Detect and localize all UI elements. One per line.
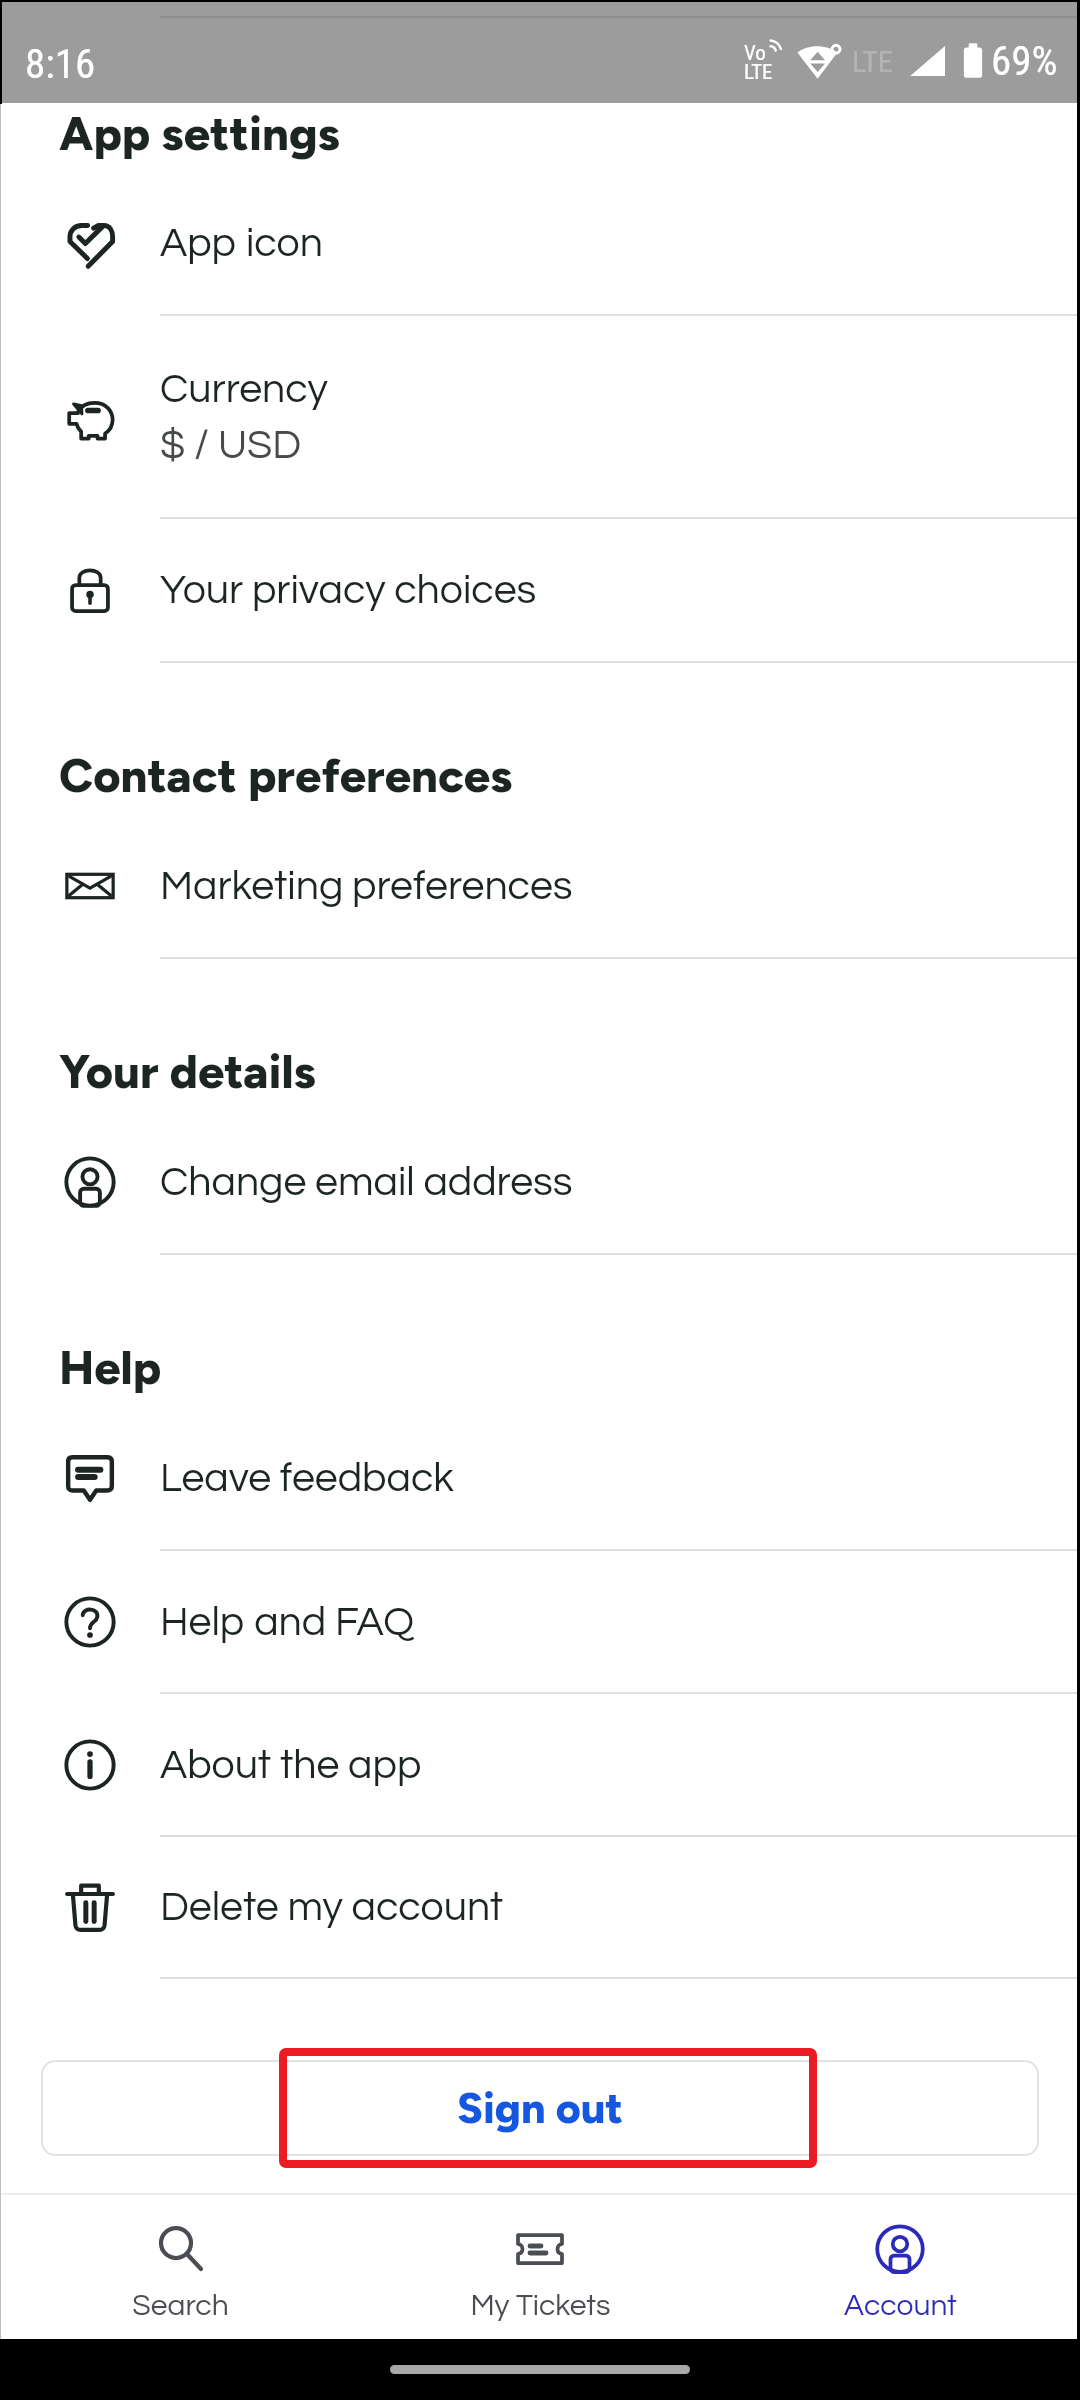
staticText: App icon: [160, 222, 323, 264]
staticText: My Tickets: [470, 2290, 611, 2321]
staticText: App settings: [59, 105, 341, 161]
button[interactable]: Currency: [0, 316, 1080, 517]
staticText: Your details: [59, 1043, 317, 1099]
staticText: Help: [59, 1339, 162, 1395]
staticText: 8:16: [25, 40, 96, 88]
staticText: Vo: [744, 41, 766, 66]
staticText: Your privacy choices: [160, 569, 537, 611]
staticText: Leave feedback: [160, 1457, 454, 1499]
staticText: Sign out: [457, 2082, 624, 2134]
button[interactable]: Change email address: [0, 1110, 1080, 1253]
button[interactable]: About the app: [0, 1694, 1080, 1835]
button[interactable]: Account: [720, 2195, 1080, 2339]
button[interactable]: Search: [0, 2195, 360, 2339]
staticText: LTE: [852, 44, 893, 79]
staticText: About the app: [160, 1744, 422, 1786]
staticText: Contact preferences: [59, 747, 513, 803]
button[interactable]: Delete my account: [0, 1837, 1080, 1977]
staticText: 69%: [991, 37, 1058, 85]
button[interactable]: Marketing preferences: [0, 814, 1080, 957]
staticText: Search: [132, 2290, 229, 2321]
staticText: Delete my account: [160, 1886, 504, 1928]
staticText: Account: [844, 2290, 957, 2321]
button[interactable]: Leave feedback: [0, 1406, 1080, 1549]
button[interactable]: Your privacy choices: [0, 519, 1080, 661]
button[interactable]: My Tickets: [360, 2195, 720, 2339]
staticText: $ / USD: [160, 424, 301, 466]
staticText: Change email address: [160, 1161, 573, 1203]
button[interactable]: Help and FAQ: [0, 1551, 1080, 1692]
staticText: LTE: [744, 60, 773, 85]
staticText: Help and FAQ: [160, 1601, 414, 1643]
staticText: Currency: [160, 368, 328, 410]
button[interactable]: Sign out: [41, 2060, 1039, 2156]
staticText: Marketing preferences: [160, 865, 573, 907]
button[interactable]: App icon: [0, 171, 1080, 314]
